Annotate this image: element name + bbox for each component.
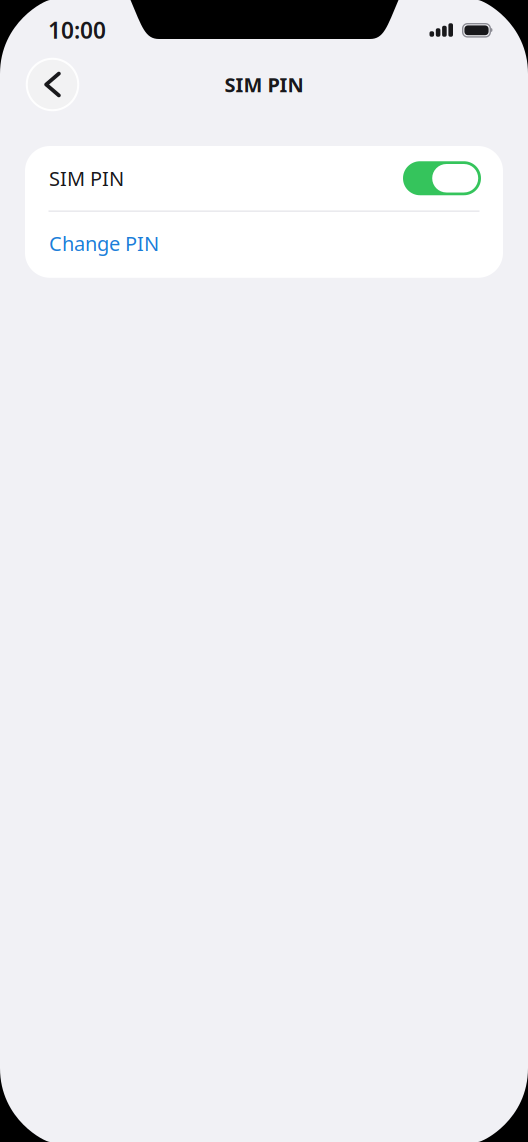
button[interactable]: SIM PIN xyxy=(25,146,503,210)
staticText: SIM PIN xyxy=(49,165,124,192)
button[interactable]: Change PIN xyxy=(25,212,503,278)
staticText: Change PIN xyxy=(49,230,159,257)
staticText: 10:00 xyxy=(48,15,106,45)
button[interactable]: Back xyxy=(26,58,79,111)
staticText: SIM PIN xyxy=(224,71,303,98)
